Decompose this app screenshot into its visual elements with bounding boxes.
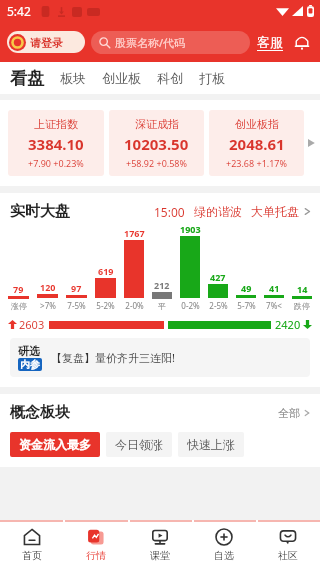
- staticText: +58.92 +0.58%: [126, 157, 187, 169]
- staticText: 平: [158, 301, 166, 311]
- staticText: 看盘: [10, 68, 44, 89]
- button[interactable]: 创业板: [102, 70, 141, 86]
- staticText: 大单托盘: [251, 204, 299, 219]
- staticText: 创业板: [102, 70, 141, 86]
- staticText: 7-5%: [67, 300, 86, 311]
- staticText: +7.90 +0.23%: [28, 157, 84, 169]
- button[interactable]: 社区: [256, 522, 320, 568]
- staticText: 深证成指: [135, 117, 179, 131]
- button[interactable]: 快速上涨: [178, 432, 244, 457]
- button[interactable]: 科创: [157, 70, 183, 86]
- staticText: 社区: [278, 549, 298, 562]
- staticText: 7%<: [266, 300, 282, 311]
- button[interactable]: 创业板指: [209, 110, 304, 176]
- button[interactable]: 股票名称/代码: [91, 31, 250, 54]
- staticText: 97: [71, 282, 82, 294]
- staticText: 5:42: [7, 3, 31, 19]
- button[interactable]: 全部: [278, 406, 311, 420]
- staticText: 全部: [278, 406, 300, 420]
- staticText: 今日领涨: [115, 437, 163, 452]
- button[interactable]: 请登录: [7, 31, 85, 53]
- button[interactable]: 深证成指: [109, 110, 204, 176]
- staticText: +23.68 +1.17%: [226, 157, 287, 169]
- staticText: 自选: [214, 549, 234, 562]
- button[interactable]: 看盘: [10, 68, 44, 89]
- button[interactable]: 客服: [257, 34, 283, 51]
- staticText: 41: [269, 282, 280, 294]
- staticText: 3384.10: [28, 134, 84, 154]
- staticText: 上证指数: [34, 117, 78, 131]
- staticText: 120: [40, 281, 56, 293]
- staticText: 科创: [157, 70, 183, 86]
- staticText: 15:00: [154, 204, 185, 220]
- staticText: 课堂: [150, 549, 170, 562]
- staticText: 2-5%: [209, 300, 228, 311]
- staticText: 5-2%: [96, 300, 115, 311]
- staticText: 10203.50: [124, 134, 189, 154]
- staticText: 研选: [18, 344, 40, 358]
- staticText: 2048.61: [229, 134, 285, 154]
- staticText: 1903: [180, 223, 201, 235]
- staticText: 跌停: [294, 301, 310, 311]
- staticText: 14: [297, 283, 308, 295]
- button[interactable]: 板块: [60, 70, 86, 86]
- staticText: 49: [241, 282, 252, 294]
- staticText: 0-2%: [181, 300, 200, 311]
- button[interactable]: 打板: [199, 70, 225, 86]
- staticText: 资金流入最多: [19, 437, 91, 452]
- button[interactable]: 资金流入最多: [10, 432, 100, 457]
- staticText: 行情: [86, 549, 106, 562]
- staticText: 79: [13, 283, 24, 295]
- staticText: 快速上涨: [187, 437, 235, 452]
- button[interactable]: 绿的谐波: [194, 204, 242, 219]
- staticText: 619: [98, 265, 114, 277]
- staticText: 涨停: [11, 301, 27, 311]
- button[interactable]: 上证指数: [8, 110, 104, 176]
- button[interactable]: 今日领涨: [106, 432, 172, 457]
- staticText: 427: [210, 271, 226, 283]
- staticText: >7%: [40, 300, 56, 311]
- staticText: 绿的谐波: [194, 204, 242, 219]
- staticText: 首页: [22, 549, 42, 562]
- button[interactable]: 首页: [0, 522, 64, 568]
- staticText: 实时大盘: [10, 202, 70, 221]
- button[interactable]: 研选: [10, 338, 310, 377]
- staticText: 打板: [199, 70, 225, 86]
- staticText: 2603: [19, 317, 45, 332]
- staticText: 1767: [124, 227, 145, 239]
- staticText: 2-0%: [125, 300, 144, 311]
- staticText: 客服: [257, 34, 283, 50]
- button[interactable]: Notifications: [291, 31, 313, 53]
- staticText: 创业板指: [235, 117, 279, 131]
- button[interactable]: 行情: [64, 522, 128, 568]
- staticText: 内参: [20, 358, 40, 371]
- staticText: 板块: [60, 70, 86, 86]
- button[interactable]: 大单托盘: [251, 204, 299, 219]
- button[interactable]: 自选: [192, 522, 256, 568]
- staticText: 请登录: [30, 36, 63, 50]
- staticText: 2420: [275, 317, 301, 332]
- staticText: 212: [154, 279, 170, 291]
- staticText: 【复盘】量价齐升三连阳!: [51, 350, 175, 365]
- staticText: 5-7%: [237, 300, 256, 311]
- button[interactable]: 课堂: [128, 522, 192, 568]
- button[interactable]: More indices: [304, 108, 320, 178]
- staticText: 股票名称/代码: [115, 35, 186, 50]
- staticText: 概念板块: [10, 403, 70, 422]
